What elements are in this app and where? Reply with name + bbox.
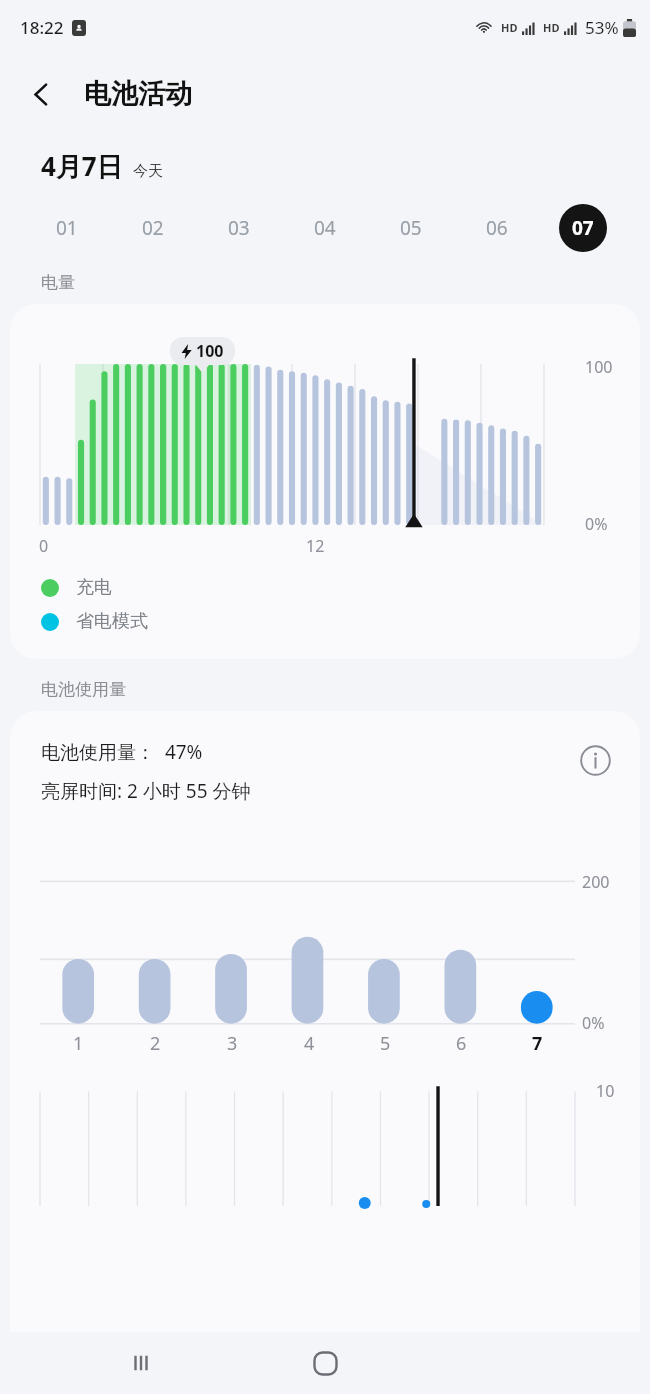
staticText: 充电	[76, 576, 112, 599]
button[interactable]: 01	[24, 200, 110, 256]
button[interactable]: 04	[282, 200, 368, 256]
staticText: 200	[582, 871, 610, 893]
staticText: 4	[304, 1031, 315, 1056]
staticText: 1	[73, 1031, 84, 1056]
staticText: 12	[306, 535, 325, 557]
button[interactable]: Info	[574, 739, 616, 781]
button[interactable]: 100	[10, 304, 640, 659]
staticText: 100	[196, 340, 224, 362]
staticText: 0	[39, 535, 49, 557]
button[interactable]: 电池使用量： 47%	[10, 711, 640, 1394]
staticText: 53%	[585, 16, 619, 39]
staticText: 04	[314, 215, 336, 241]
staticText: 7	[532, 1031, 543, 1056]
staticText: 电池活动	[84, 77, 192, 111]
staticText: 06	[486, 215, 508, 241]
button[interactable]: 省电模式	[41, 610, 148, 633]
button[interactable]: 06	[454, 200, 540, 256]
button[interactable]: Recents	[112, 1334, 170, 1392]
staticText: 省电模式	[76, 610, 148, 633]
staticText: 18:22	[20, 16, 64, 39]
button[interactable]: 03	[196, 200, 282, 256]
button[interactable]: 05	[368, 200, 454, 256]
staticText: 05	[400, 215, 422, 241]
staticText: 100	[585, 356, 613, 378]
button[interactable]: 充电	[41, 576, 112, 599]
staticText: 6	[456, 1031, 467, 1056]
staticText: 电池使用量： 47%	[41, 739, 203, 765]
button[interactable]: Back	[12, 65, 70, 123]
staticText: 02	[142, 215, 164, 241]
staticText: 0%	[585, 513, 608, 535]
button[interactable]: 02	[110, 200, 196, 256]
staticText: HD	[543, 20, 560, 35]
staticText: 2	[150, 1031, 161, 1056]
button[interactable]: 07	[540, 200, 626, 256]
staticText: 3	[227, 1031, 238, 1056]
staticText: 电池使用量	[41, 679, 126, 700]
staticText: 电量	[41, 272, 75, 293]
staticText: 01	[56, 215, 78, 241]
staticText: HD	[501, 20, 518, 35]
staticText: 07	[572, 215, 594, 241]
staticText: 亮屏时间: 2 小时 55 分钟	[41, 778, 251, 804]
staticText: 5	[380, 1031, 391, 1056]
staticText: 10	[596, 1080, 615, 1102]
staticText: 4月7日	[41, 148, 123, 184]
staticText: 今天	[133, 162, 163, 181]
button[interactable]: Home	[296, 1334, 354, 1392]
staticText: 0%	[582, 1012, 605, 1034]
staticText: 03	[228, 215, 250, 241]
